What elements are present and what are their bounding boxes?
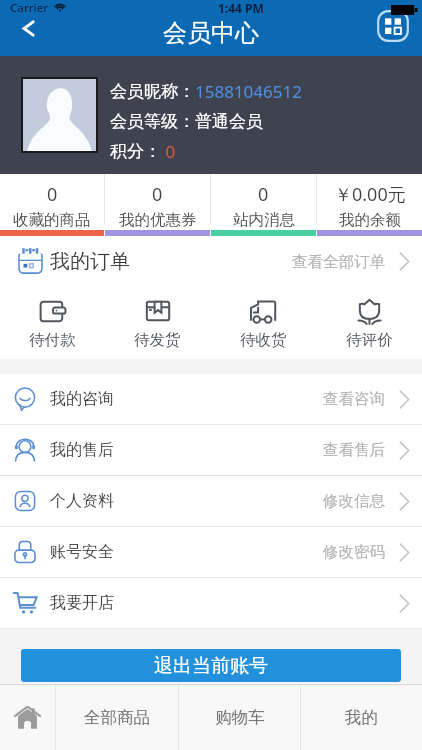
staticText: 会员等级： [110,111,195,132]
button[interactable]: 我要开店 [0,578,422,628]
staticText: 修改信息 [323,491,385,511]
staticText: 退出当前账号 [154,654,268,678]
button[interactable]: 待付款 [0,287,105,359]
button[interactable]: ￥0.00元 [317,174,422,236]
button[interactable]: 0 [0,174,104,236]
staticText: 0 [152,182,163,207]
button[interactable]: 购物车 [179,685,300,750]
button[interactable]: 全部商品 [56,685,178,750]
staticText: 我的订单 [50,249,130,274]
staticText: 待评价 [346,330,393,350]
staticText: 站内消息 [233,210,295,230]
staticText: 普通会员 [195,111,263,132]
staticText: 我的余额 [339,210,401,230]
button[interactable]: 待收货 [210,287,316,359]
staticText: 我的售后 [50,440,114,460]
staticText: 待发货 [134,330,181,350]
button[interactable]: 我的售后 [0,425,422,475]
staticText: ￥0.00元 [334,182,406,207]
button[interactable]: 0 [211,174,316,236]
button[interactable]: 退出当前账号 [21,649,401,682]
staticText: 修改密码 [323,542,385,562]
staticText: 查看咨询 [323,389,385,409]
button[interactable]: 我的 [301,685,422,750]
staticText: 我的优惠券 [119,210,197,230]
staticText: 待收货 [240,330,287,350]
staticText: 全部商品 [84,707,150,728]
button[interactable]: 账号安全 [0,527,422,577]
button[interactable]: Back [0,20,52,56]
staticText: 查看全部订单 [292,252,385,272]
button[interactable]: 我的订单 [0,236,422,287]
staticText: Carrier [10,0,49,16]
staticText: 购物车 [215,707,265,728]
staticText: 会员中心 [163,18,259,48]
staticText: 1:44 PM [218,0,264,16]
staticText: 我的咨询 [50,389,114,409]
staticText: 我的 [345,707,378,728]
staticText: 账号安全 [50,542,114,562]
staticText: 我要开店 [50,593,114,613]
button[interactable]: 个人资料 [0,476,422,526]
staticText: 0 [258,182,269,207]
staticText: 个人资料 [50,491,114,511]
staticText: 0 [47,182,58,207]
button[interactable]: 待发货 [105,287,210,359]
staticText: 查看售后 [323,440,385,460]
button[interactable]: 0 [105,174,210,236]
staticText: 0 [161,140,176,163]
staticText: 待付款 [29,330,76,350]
staticText: 积分： [110,141,161,162]
button[interactable]: Grid menu [375,8,411,44]
button[interactable]: 我的咨询 [0,374,422,424]
staticText: 15881046512 [195,80,302,103]
staticText: 会员昵称： [110,81,195,102]
button[interactable]: Home [0,685,55,750]
staticText: 收藏的商品 [13,210,91,230]
button[interactable]: 待评价 [316,287,422,359]
